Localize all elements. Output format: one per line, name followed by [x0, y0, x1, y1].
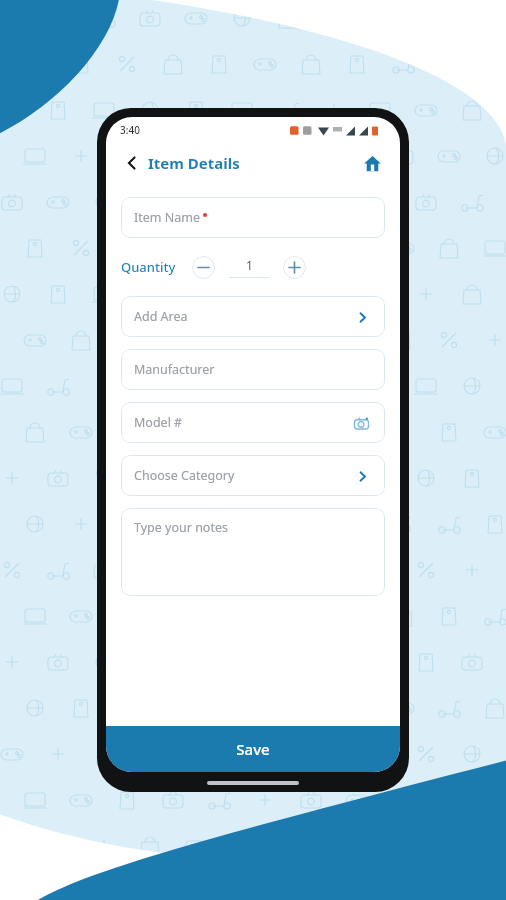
staticText: Choose Category: [134, 467, 235, 484]
button[interactable]: Scan barcode: [350, 412, 372, 434]
other: Open: [352, 466, 372, 486]
button[interactable]: Manufacturer: [121, 349, 385, 390]
other: Open: [352, 307, 372, 327]
button[interactable]: Save: [106, 726, 400, 772]
staticText: Save: [236, 739, 270, 759]
button[interactable]: Type your notes: [121, 508, 385, 596]
staticText: Item Name: [134, 209, 200, 226]
button[interactable]: Choose Category: [121, 455, 385, 496]
button[interactable]: Item Name: [121, 197, 385, 238]
staticText: 3:40: [120, 123, 140, 137]
staticText: Manufacturer: [134, 361, 215, 378]
button[interactable]: Home: [358, 149, 386, 177]
staticText: Add Area: [134, 308, 188, 325]
button[interactable]: Add Area: [121, 296, 385, 337]
staticText: Model #: [134, 414, 183, 431]
button[interactable]: Model #: [121, 402, 385, 443]
button[interactable]: Back: [120, 151, 144, 175]
staticText: Quantity: [121, 258, 176, 276]
button[interactable]: Increase quantity: [283, 256, 306, 279]
staticText: Type your notes: [134, 519, 228, 536]
staticText: Item Details: [148, 153, 240, 173]
staticText: 1: [246, 257, 253, 273]
button[interactable]: Decrease quantity: [192, 256, 215, 279]
